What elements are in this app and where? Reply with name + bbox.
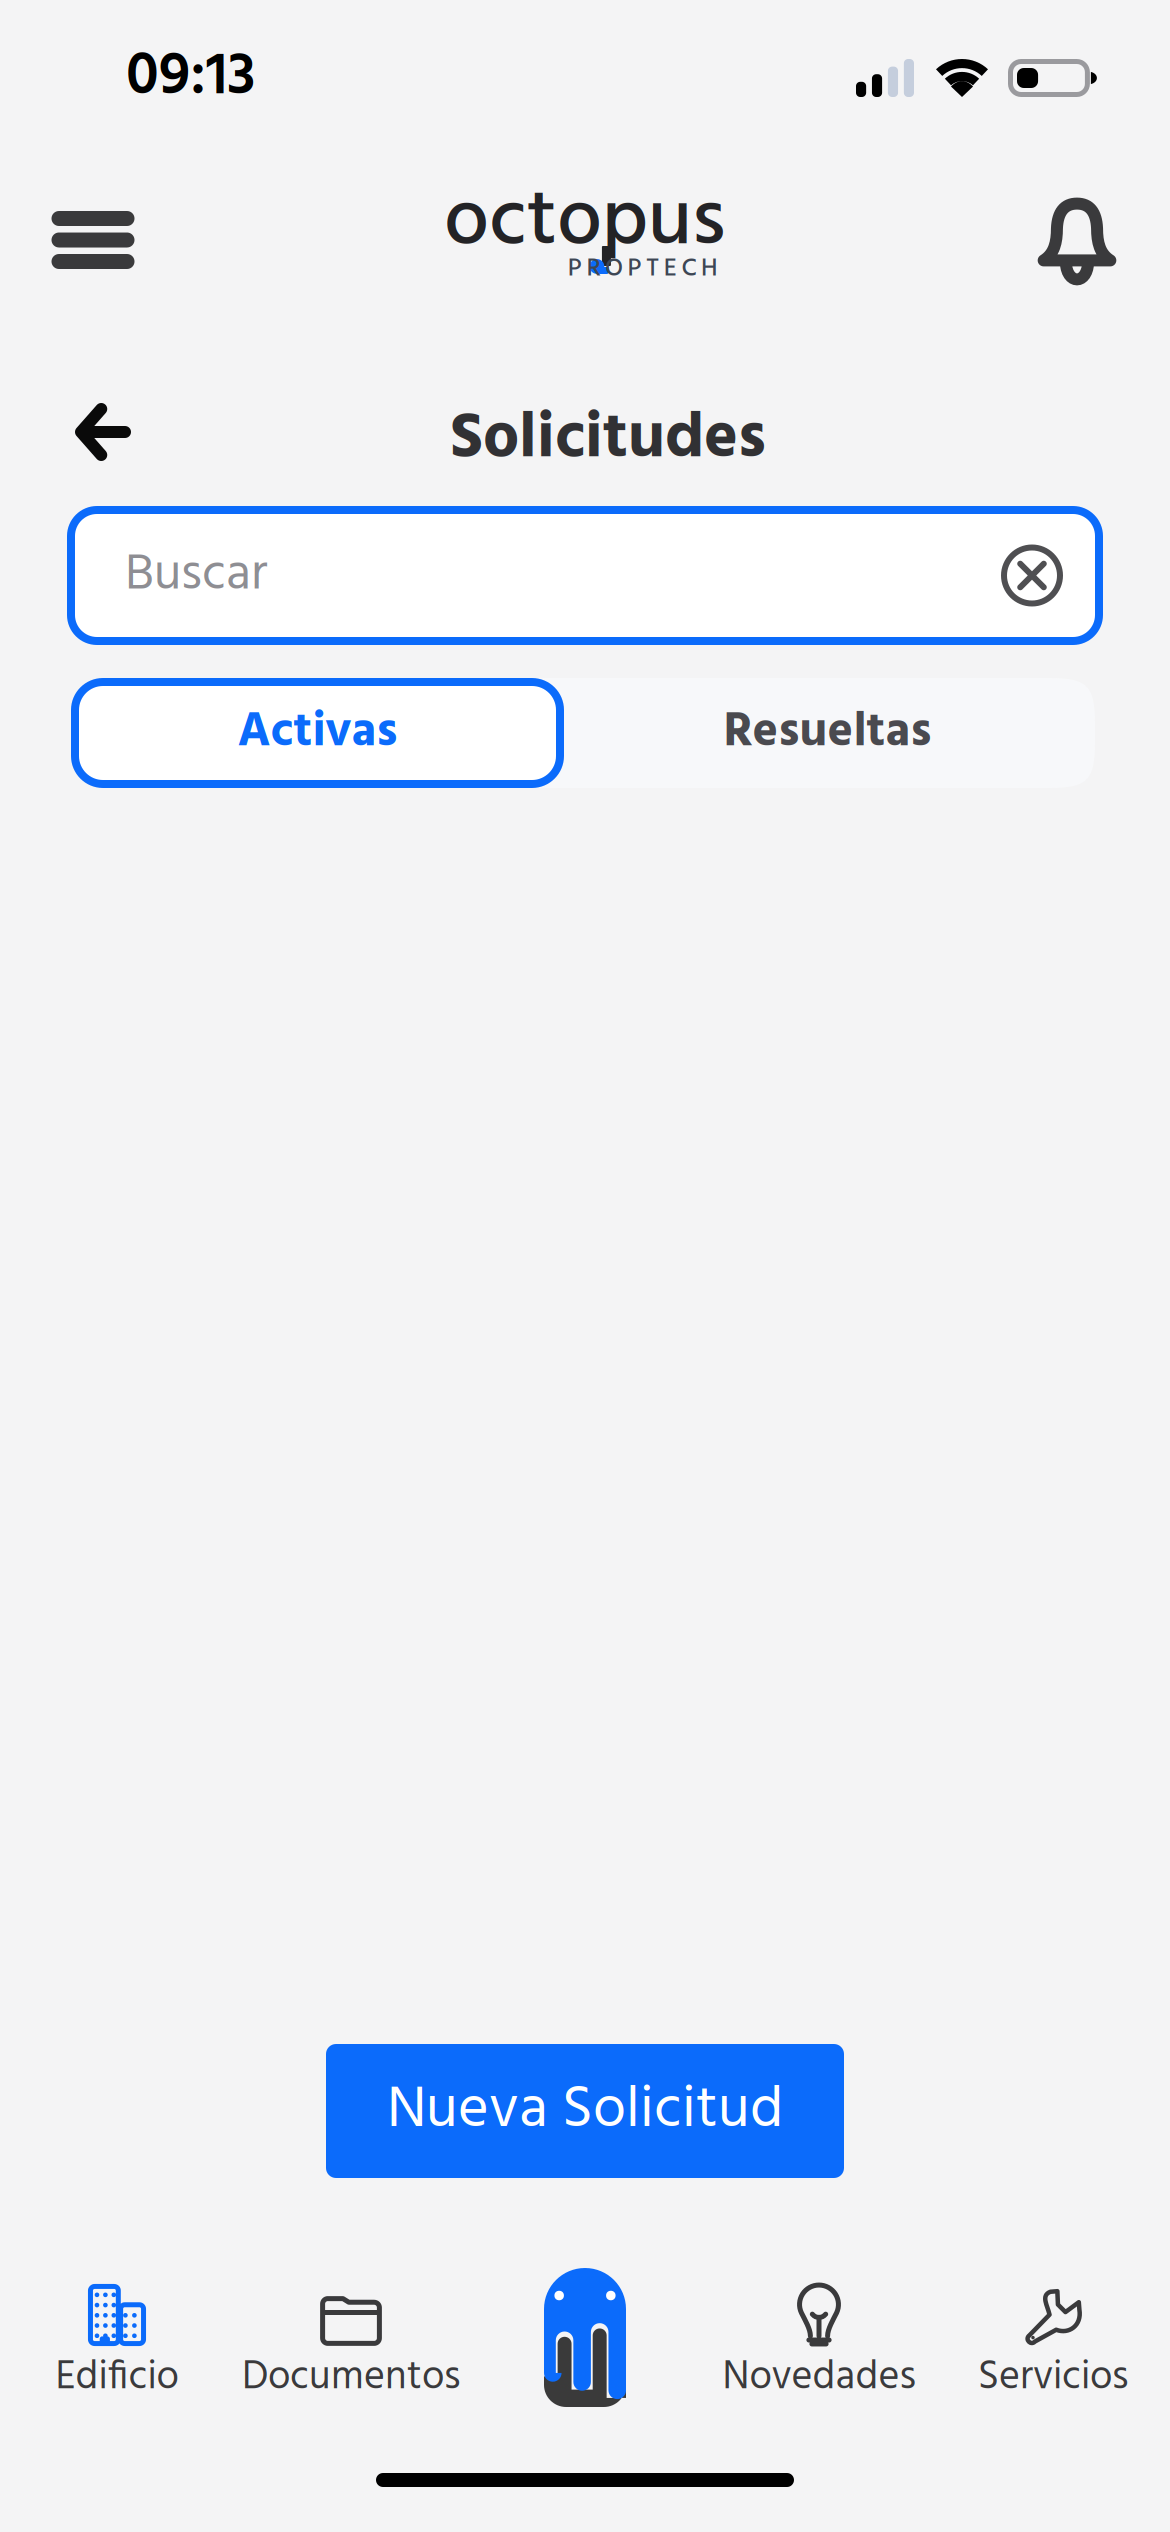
button[interactable]: Back [51,398,155,488]
button[interactable]: Inicio [468,2282,702,2400]
staticText: Buscar [125,535,268,616]
button[interactable]: Resueltas [560,682,1095,784]
staticText: Edificio [55,2346,178,2410]
button[interactable]: Buscar [71,510,1099,641]
staticText: octopus [444,159,726,287]
staticText: Novedades [722,2346,915,2410]
staticText: E [664,249,677,289]
staticText: Servicios [978,2346,1128,2410]
button[interactable]: Servicios [936,2282,1170,2400]
staticText: P [628,249,642,289]
staticText: T [646,249,659,289]
staticText: O [605,249,623,289]
staticText: 09:13 [126,30,256,126]
button[interactable]: Notifications [1013,184,1141,296]
staticText: H [701,249,718,289]
button[interactable]: Activas [75,682,560,784]
staticText: Documentos [242,2346,460,2410]
staticText: P [568,249,582,289]
staticText: Resueltas [723,695,931,771]
staticText: C [681,249,696,289]
staticText: R [586,249,600,289]
staticText: Nueva Solicitud [387,2064,783,2158]
button[interactable]: Documentos [234,2282,468,2400]
button[interactable]: Nueva Solicitud [326,2044,844,2178]
button[interactable]: Menu [29,184,157,295]
button[interactable]: Edificio [0,2282,234,2400]
staticText: Activas [237,695,397,771]
staticText: Solicitudes [450,389,766,491]
button[interactable]: Novedades [702,2282,936,2400]
